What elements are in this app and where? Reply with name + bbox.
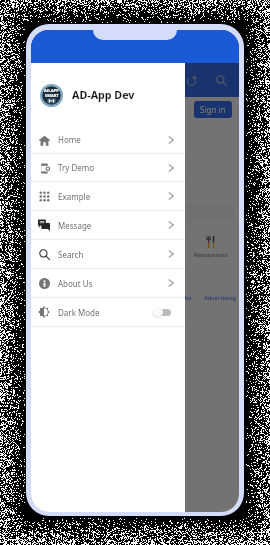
button[interactable]: Search xyxy=(211,70,231,90)
button[interactable]: Search xyxy=(31,240,185,268)
button[interactable]: Dark Mode xyxy=(31,298,185,326)
staticText: Sign in xyxy=(200,104,226,115)
staticText: Message xyxy=(58,220,92,231)
button[interactable]: Message xyxy=(31,211,185,239)
button[interactable]: Sign in xyxy=(194,101,232,118)
staticText: AD-App Dev xyxy=(72,88,135,103)
button[interactable]: Try Demo xyxy=(31,154,185,181)
staticText: AD-APP xyxy=(44,88,59,93)
button[interactable]: Example xyxy=(31,182,185,210)
staticText: India xyxy=(177,294,192,302)
button[interactable]: About Us xyxy=(31,269,185,297)
staticText: Search xyxy=(58,249,84,260)
staticText: Try Demo xyxy=(58,162,95,173)
staticText: Advertising xyxy=(204,294,236,302)
staticText: SMART xyxy=(45,93,59,98)
staticText: Dark Mode xyxy=(58,307,100,318)
button[interactable] xyxy=(61,204,234,222)
staticText: About Us xyxy=(58,278,93,289)
staticText: Home xyxy=(58,134,81,145)
button[interactable]: Restaurants xyxy=(191,236,231,259)
staticText: Example xyxy=(58,191,91,202)
button[interactable]: Home xyxy=(31,126,185,153)
button[interactable]: Refresh xyxy=(181,70,201,90)
staticText: Restaurants xyxy=(194,251,228,259)
